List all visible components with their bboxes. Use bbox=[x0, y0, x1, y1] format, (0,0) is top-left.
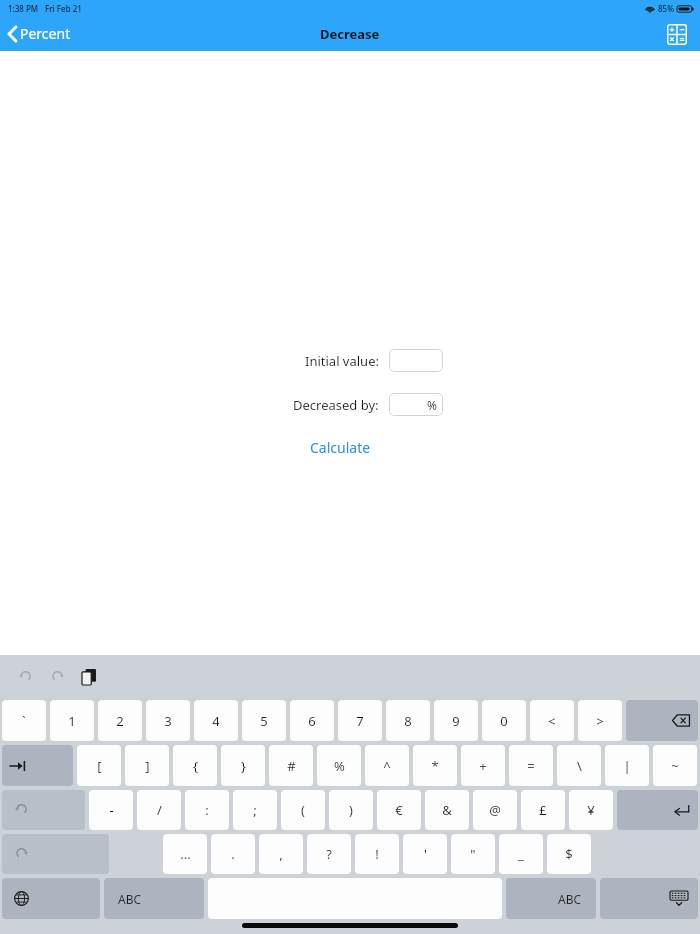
button[interactable]: ^ bbox=[365, 745, 409, 786]
staticText: Percent bbox=[20, 24, 71, 43]
staticText: @ bbox=[489, 801, 501, 819]
button[interactable]: [ bbox=[77, 745, 121, 786]
staticText: 5 bbox=[260, 712, 268, 730]
button[interactable]: Undo bbox=[12, 664, 38, 690]
button[interactable]: _ bbox=[499, 834, 543, 874]
button[interactable]: % bbox=[389, 393, 443, 416]
button[interactable]: Undo bbox=[2, 790, 85, 830]
button[interactable]: ' bbox=[403, 834, 447, 874]
button[interactable]: = bbox=[509, 745, 553, 786]
button[interactable]: ? bbox=[307, 834, 351, 874]
staticText: * bbox=[431, 757, 439, 775]
staticText: Calculate bbox=[310, 438, 371, 457]
staticText: € bbox=[395, 801, 403, 819]
button[interactable]: ~ bbox=[653, 745, 697, 786]
button[interactable]: } bbox=[221, 745, 265, 786]
staticText: ! bbox=[375, 845, 379, 863]
staticText: { bbox=[193, 757, 198, 775]
button[interactable]: ( bbox=[281, 790, 325, 830]
button[interactable]: * bbox=[413, 745, 457, 786]
button[interactable]: ABC bbox=[104, 878, 204, 919]
button[interactable]: + bbox=[461, 745, 505, 786]
staticText: % bbox=[334, 757, 345, 775]
button[interactable]: € bbox=[377, 790, 421, 830]
button[interactable]: > bbox=[578, 700, 622, 741]
staticText: ] bbox=[145, 757, 150, 775]
button[interactable]: 1 bbox=[50, 700, 94, 741]
button[interactable]: @ bbox=[473, 790, 517, 830]
button[interactable]: # bbox=[269, 745, 313, 786]
button[interactable]: . bbox=[211, 834, 255, 874]
staticText: ; bbox=[253, 801, 257, 819]
button[interactable]: 0 bbox=[482, 700, 526, 741]
button[interactable]: ¥ bbox=[569, 790, 613, 830]
button[interactable]: Tab bbox=[2, 745, 73, 786]
button[interactable]: Redo bbox=[2, 834, 109, 874]
staticText: ... bbox=[180, 845, 191, 863]
button[interactable]: & bbox=[425, 790, 469, 830]
button[interactable]: £ bbox=[521, 790, 565, 830]
button[interactable]: 2 bbox=[98, 700, 142, 741]
button[interactable]: \ bbox=[557, 745, 601, 786]
button[interactable]: ... bbox=[163, 834, 207, 874]
button[interactable]: 4 bbox=[194, 700, 238, 741]
button[interactable]: % bbox=[317, 745, 361, 786]
button[interactable]: < bbox=[530, 700, 574, 741]
staticText: | bbox=[623, 757, 631, 775]
button[interactable]: ) bbox=[329, 790, 373, 830]
button[interactable]: ] bbox=[125, 745, 169, 786]
button[interactable]: - bbox=[89, 790, 133, 830]
staticText: } bbox=[241, 757, 246, 775]
button[interactable]: 3 bbox=[146, 700, 190, 741]
button[interactable]: Return bbox=[617, 790, 698, 830]
staticText: 4 bbox=[212, 712, 220, 730]
button[interactable]: ! bbox=[355, 834, 399, 874]
staticText: Fri Feb 21 bbox=[45, 3, 82, 14]
button[interactable]: Switch keyboard language bbox=[2, 878, 100, 919]
button[interactable]: Paste bbox=[76, 664, 102, 690]
staticText: & bbox=[442, 801, 452, 819]
button[interactable]: Redo bbox=[44, 664, 70, 690]
staticText: / bbox=[157, 801, 162, 819]
button[interactable]: 8 bbox=[386, 700, 430, 741]
staticText: \ bbox=[577, 757, 582, 775]
staticText: ¥ bbox=[587, 801, 595, 819]
staticText: . bbox=[231, 845, 235, 863]
button[interactable] bbox=[389, 349, 443, 372]
staticText: Decreased by: bbox=[293, 396, 379, 414]
button[interactable]: Calculate bbox=[300, 434, 381, 461]
button[interactable]: | bbox=[605, 745, 649, 786]
staticText: £ bbox=[539, 801, 547, 819]
staticText: Decrease bbox=[320, 25, 380, 43]
button[interactable]: 6 bbox=[290, 700, 334, 741]
button[interactable]: / bbox=[137, 790, 181, 830]
staticText: - bbox=[109, 801, 114, 819]
staticText: ) bbox=[349, 801, 353, 819]
button[interactable]: $ bbox=[547, 834, 591, 874]
staticText: 6 bbox=[308, 712, 316, 730]
staticText: ~ bbox=[671, 757, 679, 775]
button[interactable]: ` bbox=[2, 700, 46, 741]
button[interactable]: { bbox=[173, 745, 217, 786]
button[interactable]: ABC bbox=[506, 878, 596, 919]
button[interactable]: 9 bbox=[434, 700, 478, 741]
staticText: 0 bbox=[500, 712, 508, 730]
button[interactable]: 7 bbox=[338, 700, 382, 741]
button[interactable]: 5 bbox=[242, 700, 286, 741]
staticText: " bbox=[470, 845, 476, 863]
staticText: : bbox=[205, 801, 209, 819]
button[interactable]: Backspace bbox=[626, 700, 698, 741]
button[interactable]: , bbox=[259, 834, 303, 874]
button[interactable]: Percent bbox=[6, 20, 73, 47]
staticText: ? bbox=[326, 845, 332, 863]
staticText: $ bbox=[565, 845, 573, 863]
staticText: > bbox=[596, 712, 604, 730]
button[interactable]: ; bbox=[233, 790, 277, 830]
button[interactable]: : bbox=[185, 790, 229, 830]
button[interactable]: Calculator bbox=[664, 21, 690, 47]
staticText: Initial value: bbox=[305, 352, 379, 370]
staticText: 8 bbox=[404, 712, 412, 730]
button[interactable]: " bbox=[451, 834, 495, 874]
button[interactable]: Hide keyboard bbox=[600, 878, 698, 919]
